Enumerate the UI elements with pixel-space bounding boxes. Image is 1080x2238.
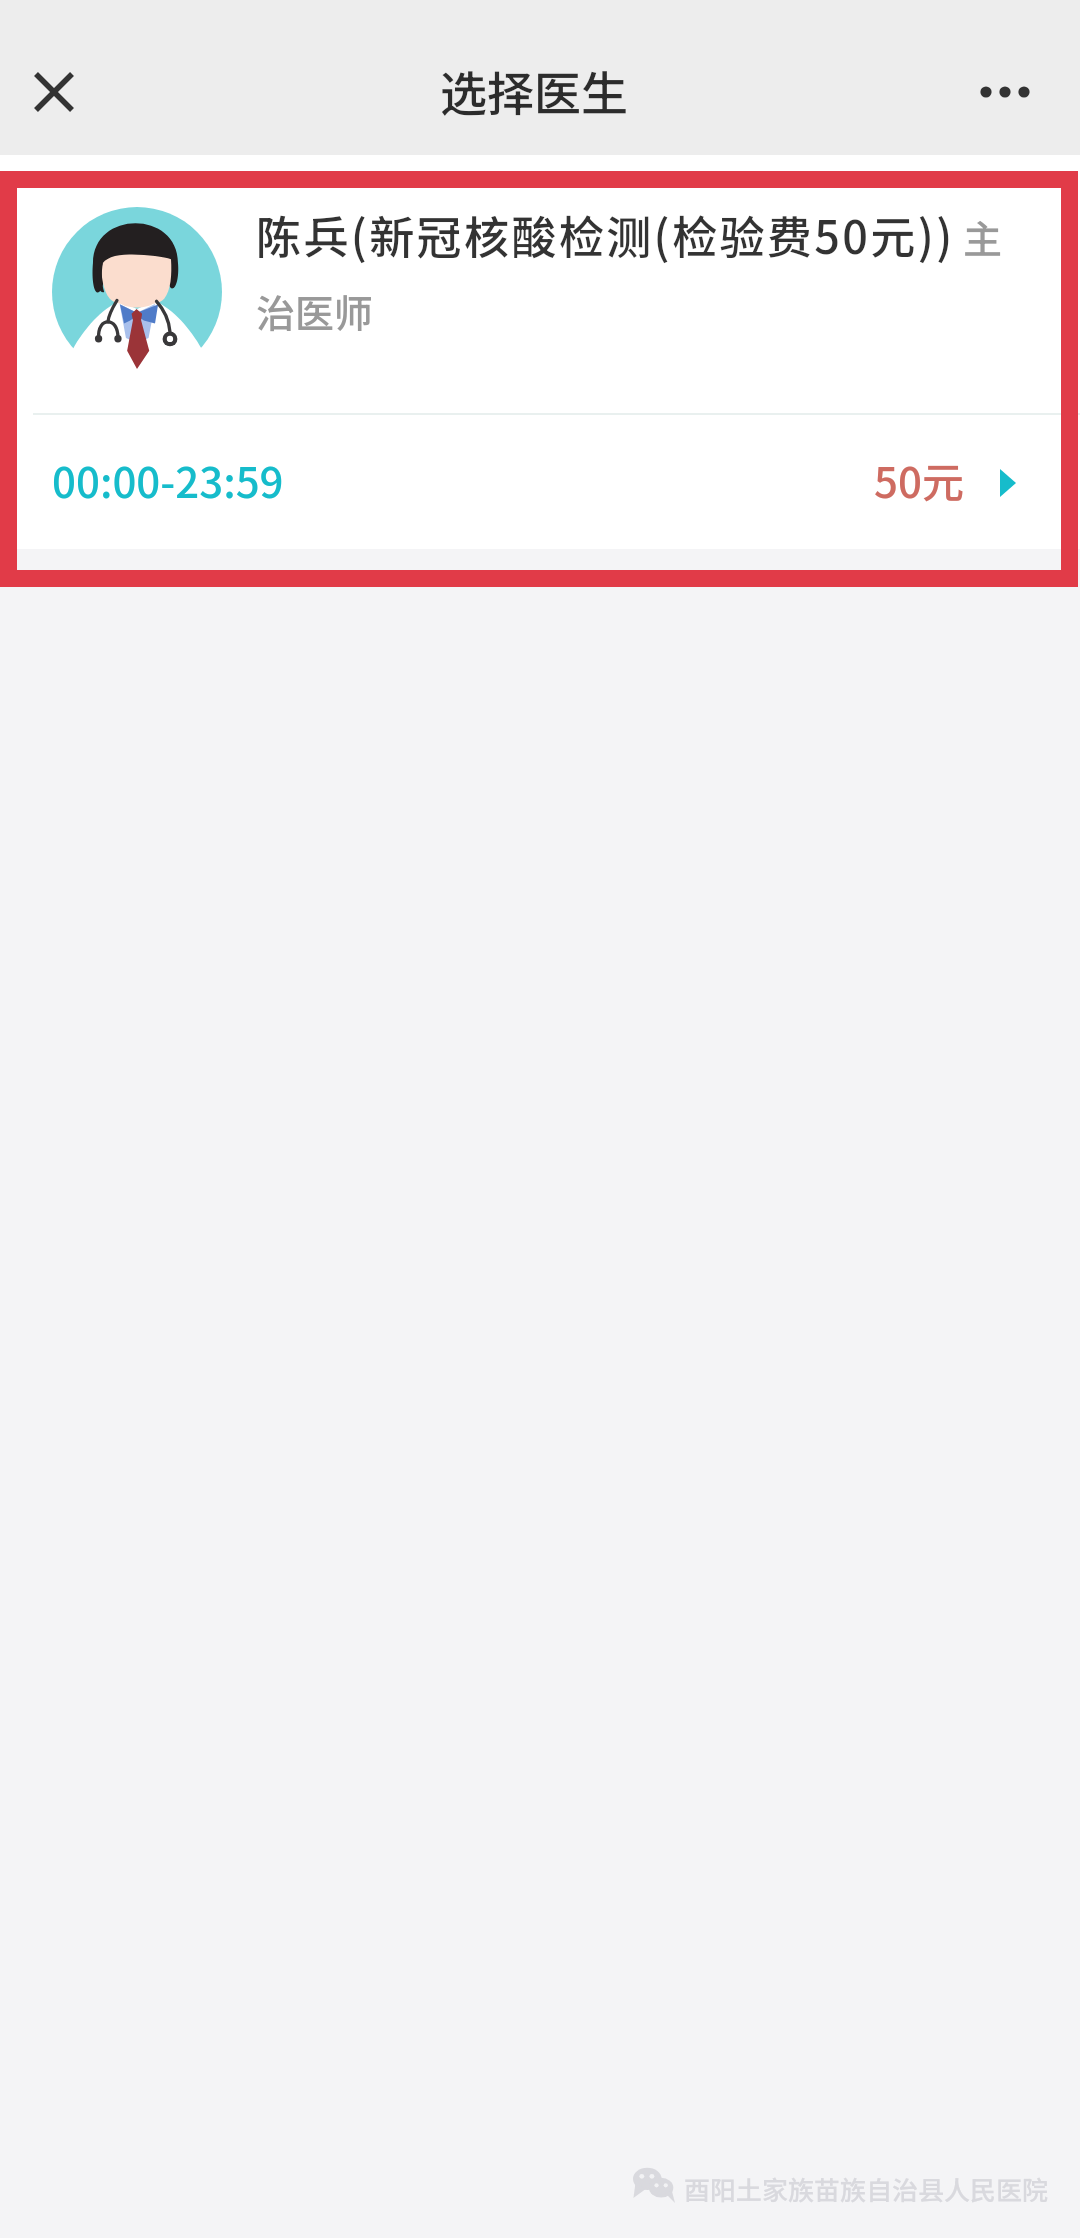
button[interactable]: More options	[969, 56, 1041, 128]
staticText: 50元	[874, 449, 964, 510]
button[interactable]: 陈兵(新冠核酸检测(检验费50元)) 主治医师	[0, 155, 1080, 413]
staticText: 00:00-23:59	[52, 449, 284, 510]
staticText: 陈兵(新冠核酸检测(检验费50元)) 主治医师	[256, 202, 1031, 340]
button[interactable]: 00:00-23:59	[0, 415, 1080, 549]
staticText: 酉阳土家族苗族自治县人民医院	[684, 2170, 1049, 2208]
button[interactable]: Close	[18, 56, 90, 128]
staticText: 选择医生	[440, 56, 628, 124]
